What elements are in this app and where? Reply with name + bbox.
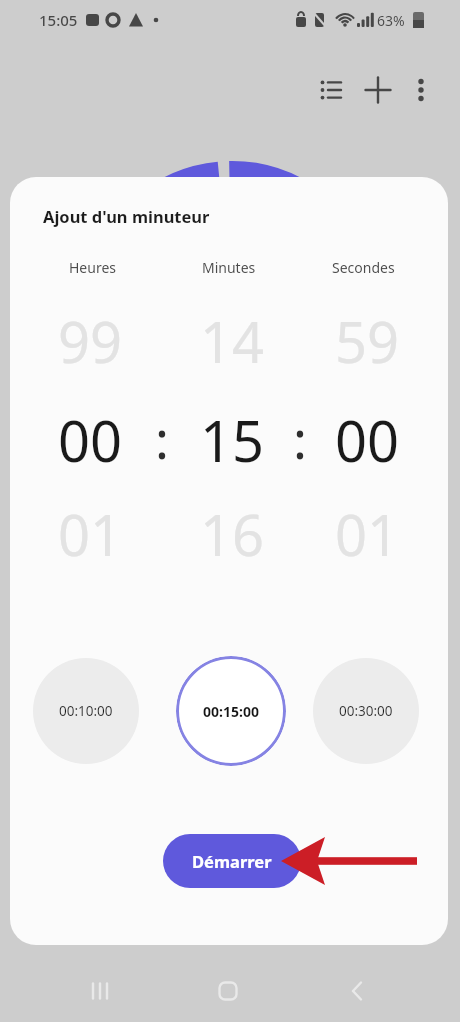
button[interactable]: 00:30:00 xyxy=(313,658,419,764)
staticText: 00:10:00 xyxy=(59,702,113,720)
button[interactable]: 00:10:00 xyxy=(33,658,139,764)
staticText: 01 xyxy=(58,496,123,572)
staticText: Secondes xyxy=(332,258,395,277)
button[interactable] xyxy=(356,68,400,112)
button[interactable] xyxy=(70,967,130,1015)
button[interactable] xyxy=(399,68,443,112)
button[interactable] xyxy=(198,967,258,1015)
staticText: Ajout d'un minuteur xyxy=(43,205,210,227)
staticText: 14 xyxy=(200,303,265,379)
button[interactable] xyxy=(309,68,353,112)
staticText: 00 xyxy=(58,402,123,478)
staticText: 01 xyxy=(335,496,400,572)
staticText: : xyxy=(293,403,307,474)
staticText: 99 xyxy=(58,303,123,379)
button[interactable] xyxy=(327,967,387,1015)
button[interactable]: 00:15:00 xyxy=(176,656,286,766)
button[interactable]: Démarrer xyxy=(163,834,301,888)
staticText: 63% xyxy=(377,11,405,30)
staticText: 00:30:00 xyxy=(339,702,393,720)
staticText: 59 xyxy=(335,303,400,379)
staticText: 15 xyxy=(200,402,265,478)
staticText: 00 xyxy=(335,402,400,478)
staticText: 16 xyxy=(200,496,265,572)
staticText: Démarrer xyxy=(192,850,272,872)
staticText: Heures xyxy=(69,258,117,277)
staticText: 15:05 xyxy=(39,10,78,30)
staticText: 00:15:00 xyxy=(203,702,259,721)
staticText: : xyxy=(155,403,169,474)
staticText: Minutes xyxy=(202,258,256,277)
